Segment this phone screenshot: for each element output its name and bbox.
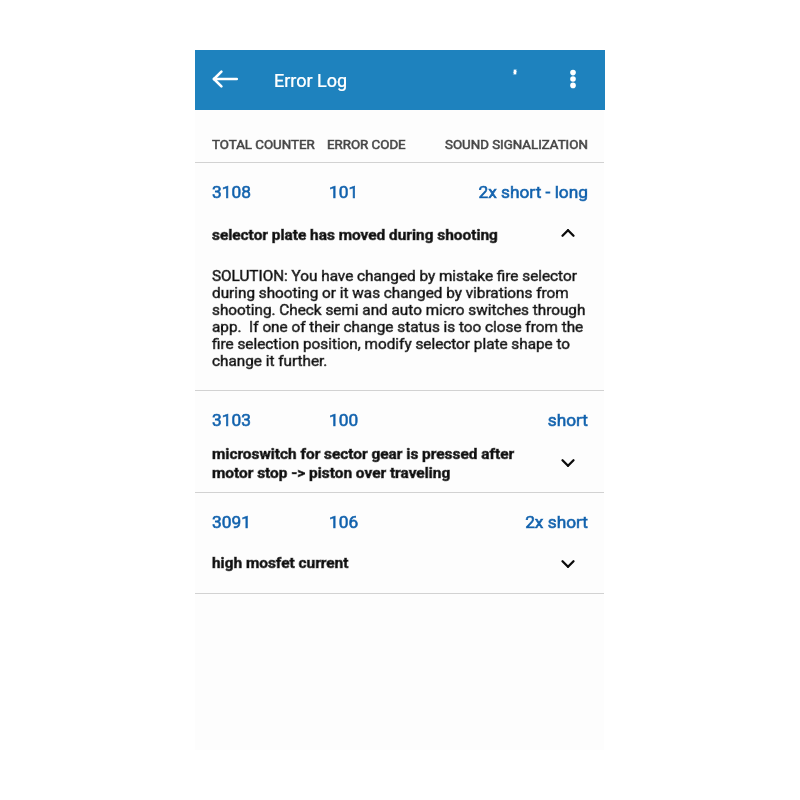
staticText: Error Log — [274, 69, 348, 92]
staticText: selector plate has moved during shooting — [212, 225, 524, 244]
staticText: SOUND SIGNALIZATION — [445, 137, 800, 153]
staticText: ERROR CODE — [327, 137, 800, 153]
staticText: 106 — [329, 512, 800, 532]
staticText: 101 — [329, 182, 800, 202]
staticText: 3091 — [212, 512, 800, 532]
staticText: 2x short — [345, 512, 588, 532]
button[interactable]: Error 101, counter 3108, selector plate … — [195, 163, 604, 390]
staticText: 3103 — [212, 410, 800, 430]
staticText: TOTAL COUNTER — [212, 137, 800, 153]
staticText: SOUND SIGNALIZATION — [445, 137, 800, 153]
staticText: selector plate has moved during shooting — [212, 225, 524, 244]
button[interactable]: Flash — [499, 56, 531, 88]
staticText: 3103 — [212, 410, 800, 430]
staticText: high mosfet current — [212, 553, 524, 572]
button[interactable]: Collapse details — [546, 211, 590, 255]
staticText: short — [345, 410, 588, 430]
staticText: 100 — [329, 410, 800, 430]
staticText: 106 — [329, 512, 800, 532]
staticText: 2x short - long — [345, 182, 588, 202]
staticText: short — [345, 410, 588, 430]
staticText: 100 — [329, 410, 800, 430]
staticText: 2x short - long — [345, 182, 588, 202]
staticText: high mosfet current — [212, 553, 524, 572]
staticText: 2x short — [345, 512, 588, 532]
button[interactable]: Navigate up — [203, 57, 247, 101]
staticText: microswitch for sector gear is pressed a… — [212, 444, 524, 482]
staticText: 3091 — [212, 512, 800, 532]
staticText: 3108 — [212, 182, 800, 202]
button[interactable]: Error 100, counter 3103, microswitch for… — [195, 391, 604, 492]
staticText: ERROR CODE — [327, 137, 800, 153]
button[interactable]: Expand details — [546, 441, 590, 485]
staticText: SOLUTION: You have changed by mistake fi… — [212, 267, 592, 369]
staticText: microswitch for sector gear is pressed a… — [212, 444, 524, 482]
staticText: SOLUTION: You have changed by mistake fi… — [212, 267, 592, 369]
button[interactable]: Expand details — [546, 542, 590, 586]
button[interactable]: Error 106, counter 3091, high mosfet cur… — [195, 493, 604, 593]
button[interactable]: More options — [551, 57, 595, 101]
staticText: TOTAL COUNTER — [212, 137, 800, 153]
staticText: 3108 — [212, 182, 800, 202]
staticText: 101 — [329, 182, 800, 202]
